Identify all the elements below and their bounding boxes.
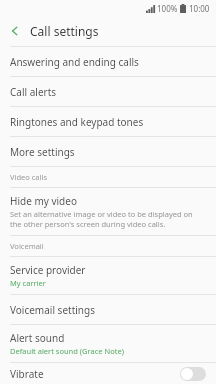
staticText: Video calls [10,172,48,182]
staticText: Default alert sound (Grace Note) [10,346,124,356]
button[interactable]: Alert sound [0,325,216,362]
staticText: More settings [10,145,75,159]
button[interactable]: Back [0,16,30,46]
staticText: Hide my video [10,194,77,208]
button[interactable]: Answering and ending calls [0,47,216,76]
button[interactable]: Vibrate [0,363,216,384]
staticText: 10:00 [189,3,210,14]
button[interactable]: More settings [0,137,216,166]
staticText: 100% [157,3,178,14]
staticText: Ringtones and keypad tones [10,115,144,129]
button[interactable]: Hide my video [0,188,216,235]
staticText: Service provider [10,263,86,277]
staticText: Alert sound [10,331,65,345]
staticText: Call settings [30,23,99,39]
staticText: My carrier [10,278,46,288]
staticText: Voicemail [10,241,44,251]
staticText: Call alerts [10,85,57,99]
staticText: Vibrate [10,367,180,381]
button[interactable]: Service provider [0,257,216,294]
button[interactable]: Call alerts [0,77,216,106]
button[interactable]: Ringtones and keypad tones [0,107,216,136]
button[interactable]: Voicemail settings [0,295,216,324]
staticText: Voicemail settings [10,303,95,317]
staticText: Set an alternative image or video to be … [10,209,206,229]
staticText: Answering and ending calls [10,55,139,69]
